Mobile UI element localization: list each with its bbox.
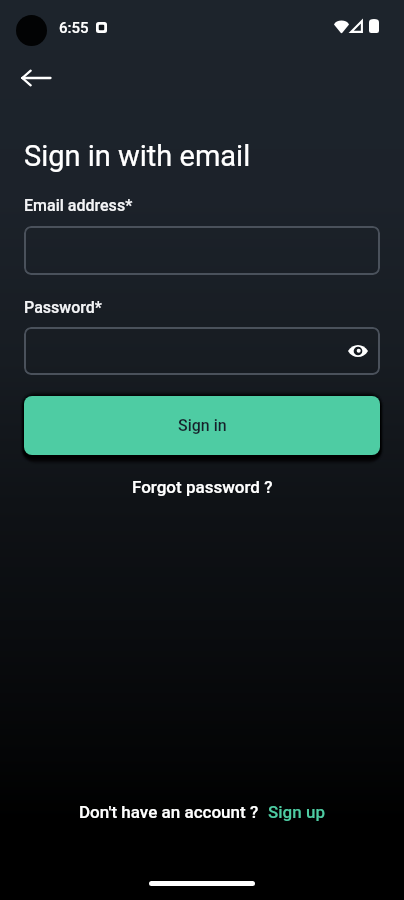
staticText: 6:55 (59, 19, 89, 37)
staticText: Sign in (178, 416, 227, 435)
staticText: Sign up (268, 802, 325, 822)
button[interactable]: Forgot password ? (122, 471, 283, 503)
button[interactable]: Sign up (268, 802, 325, 822)
button[interactable]: Back (13, 55, 59, 101)
staticText: Don't have an account ? (79, 802, 259, 822)
staticText: Email address* (24, 196, 133, 215)
button[interactable]: Show password (342, 335, 374, 367)
button[interactable]: Sign in (24, 396, 380, 455)
button[interactable] (24, 226, 380, 275)
staticText: Password* (24, 298, 102, 317)
button[interactable]: Show password (24, 327, 380, 375)
staticText: Forgot password ? (132, 477, 273, 497)
staticText: Sign in with email (24, 139, 251, 173)
